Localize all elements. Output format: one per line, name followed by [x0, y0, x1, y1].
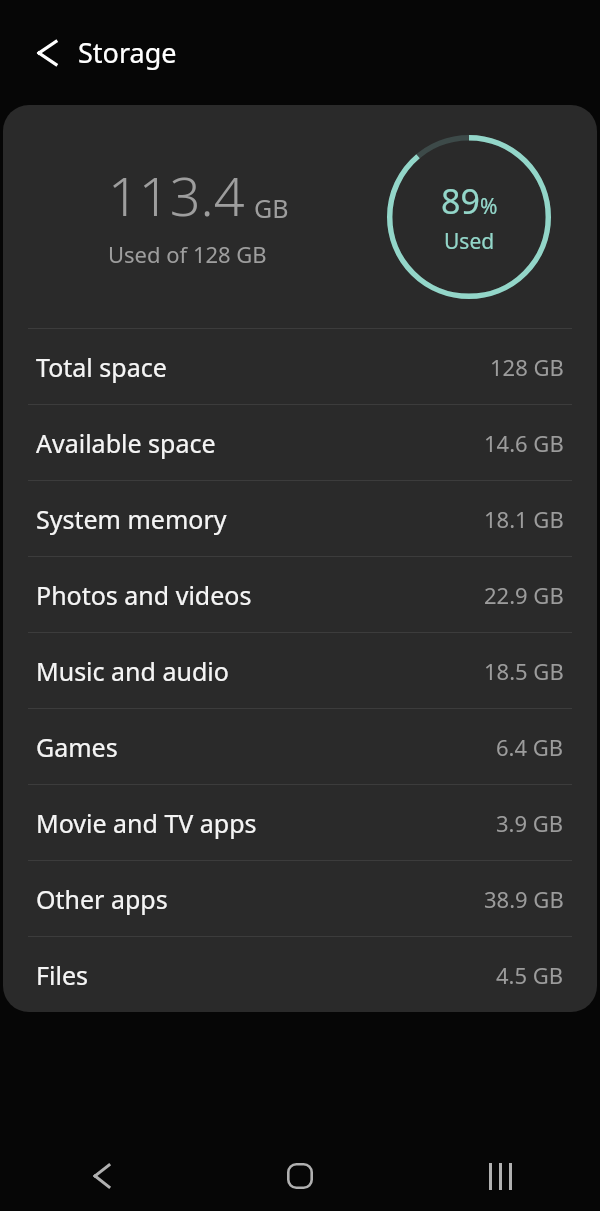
staticText: 128 GB: [490, 352, 564, 382]
staticText: Storage: [78, 34, 177, 71]
staticText: Files: [36, 958, 88, 992]
staticText: System memory: [36, 502, 227, 536]
button[interactable]: Movie and TV apps: [3, 785, 597, 860]
button[interactable]: Back: [0, 1141, 200, 1211]
staticText: 6.4 GB: [496, 732, 564, 762]
staticText: 113.4: [108, 158, 245, 232]
staticText: %: [480, 192, 498, 221]
staticText: 3.9 GB: [496, 808, 564, 838]
button[interactable]: Recent apps: [400, 1141, 600, 1211]
button[interactable]: Photos and videos: [3, 557, 597, 632]
staticText: 22.9 GB: [484, 580, 564, 610]
button[interactable]: Total space: [3, 329, 597, 404]
staticText: Movie and TV apps: [36, 806, 257, 840]
staticText: GB: [254, 191, 289, 225]
button[interactable]: Home: [200, 1141, 400, 1211]
staticText: 18.1 GB: [484, 504, 564, 534]
staticText: Games: [36, 730, 118, 764]
staticText: 89: [441, 178, 480, 224]
button[interactable]: Files: [3, 937, 597, 1012]
staticText: 14.6 GB: [484, 428, 564, 458]
button[interactable]: Music and audio: [3, 633, 597, 708]
staticText: 4.5 GB: [496, 960, 564, 990]
staticText: Other apps: [36, 882, 168, 916]
button[interactable]: Available space: [3, 405, 597, 480]
button[interactable]: System memory: [3, 481, 597, 556]
staticText: 18.5 GB: [484, 656, 564, 686]
button[interactable]: Other apps: [3, 861, 597, 936]
button[interactable]: Games: [3, 709, 597, 784]
staticText: Available space: [36, 426, 216, 460]
button[interactable]: Back: [24, 31, 68, 75]
staticText: Photos and videos: [36, 578, 252, 612]
staticText: Used: [444, 227, 495, 256]
staticText: Music and audio: [36, 654, 229, 688]
staticText: 38.9 GB: [484, 884, 564, 914]
staticText: Used of 128 GB: [108, 239, 267, 269]
staticText: Total space: [36, 350, 167, 384]
